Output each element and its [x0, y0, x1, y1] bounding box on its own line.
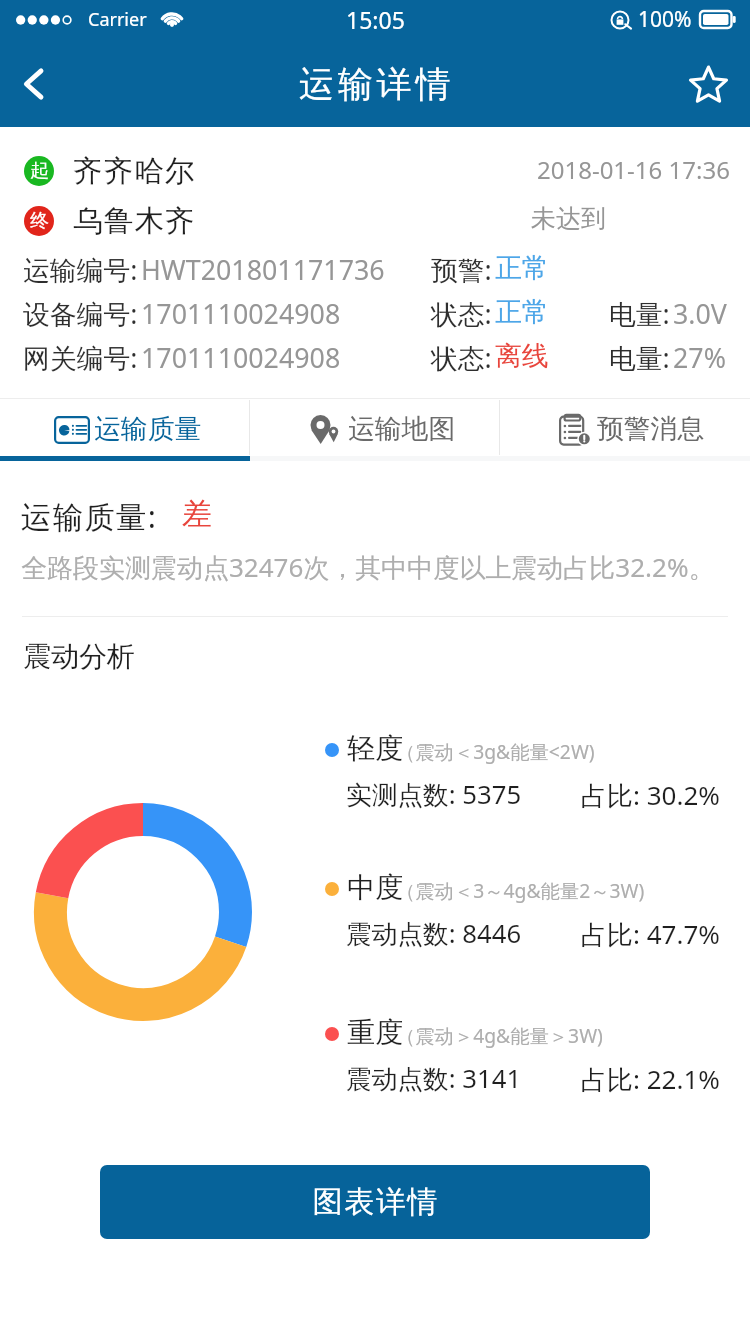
- button[interactable]: 预警消息: [500, 399, 750, 456]
- staticText: 运输质量:: [21, 495, 158, 537]
- staticText: 全路段实测震动点32476次，其中中度以上震动占比32.2%。: [21, 549, 715, 585]
- staticText: 网关编号:: [23, 339, 138, 376]
- staticText: 未达到: [531, 203, 606, 234]
- staticText: 震动点数: 3141: [346, 1061, 522, 1096]
- staticText: 乌鲁木齐: [73, 203, 196, 240]
- staticText: 正常: [495, 295, 549, 329]
- button[interactable]: Back: [0, 40, 76, 127]
- staticText: 终: [30, 209, 49, 233]
- staticText: HWT201801171736: [141, 251, 385, 288]
- staticText: 1701110024908: [141, 339, 341, 376]
- staticText: 15:05: [346, 4, 405, 35]
- staticText: 100%: [638, 5, 692, 34]
- button[interactable]: 运输质量: [0, 399, 250, 456]
- staticText: 预警:: [431, 251, 492, 288]
- staticText: （震动＜3～4g&能量2～3W): [396, 877, 645, 903]
- staticText: 起: [30, 159, 49, 183]
- staticText: 1701110024908: [141, 295, 341, 332]
- staticText: 轻度: [347, 731, 405, 766]
- staticText: 预警消息: [597, 412, 705, 446]
- staticText: 正常: [495, 251, 549, 285]
- staticText: 图表详情: [312, 1183, 438, 1221]
- staticText: 中度: [347, 870, 405, 905]
- staticText: 齐齐哈尔: [73, 153, 196, 190]
- staticText: 设备编号:: [23, 295, 138, 332]
- staticText: 占比: 47.7%: [581, 916, 720, 952]
- button[interactable]: 图表详情: [100, 1165, 650, 1239]
- staticText: Carrier: [88, 7, 147, 32]
- staticText: 电量:: [609, 339, 670, 376]
- staticText: 运输地图: [348, 412, 456, 446]
- staticText: 运输编号:: [23, 251, 138, 288]
- staticText: 占比: 22.1%: [581, 1061, 720, 1097]
- staticText: 实测点数: 5375: [346, 777, 522, 812]
- staticText: 运输详情: [299, 62, 455, 106]
- staticText: 2018-01-16 17:36: [537, 153, 730, 186]
- staticText: 差: [182, 495, 212, 533]
- staticText: 重度: [347, 1015, 405, 1050]
- staticText: 电量:: [609, 295, 670, 332]
- staticText: （震动＞4g&能量＞3W): [396, 1022, 603, 1048]
- staticText: 状态:: [431, 295, 492, 332]
- button[interactable]: 运输地图: [250, 399, 500, 456]
- staticText: 震动分析: [23, 639, 135, 674]
- staticText: （震动＜3g&能量<2W): [396, 738, 595, 764]
- button[interactable]: Favorite: [668, 40, 750, 127]
- staticText: 占比: 30.2%: [581, 777, 720, 813]
- staticText: 离线: [495, 339, 549, 373]
- staticText: 27%: [673, 339, 726, 376]
- staticText: 状态:: [431, 339, 492, 376]
- staticText: 运输质量: [94, 412, 202, 446]
- staticText: 3.0V: [673, 295, 727, 332]
- staticText: 震动点数: 8446: [346, 916, 522, 951]
